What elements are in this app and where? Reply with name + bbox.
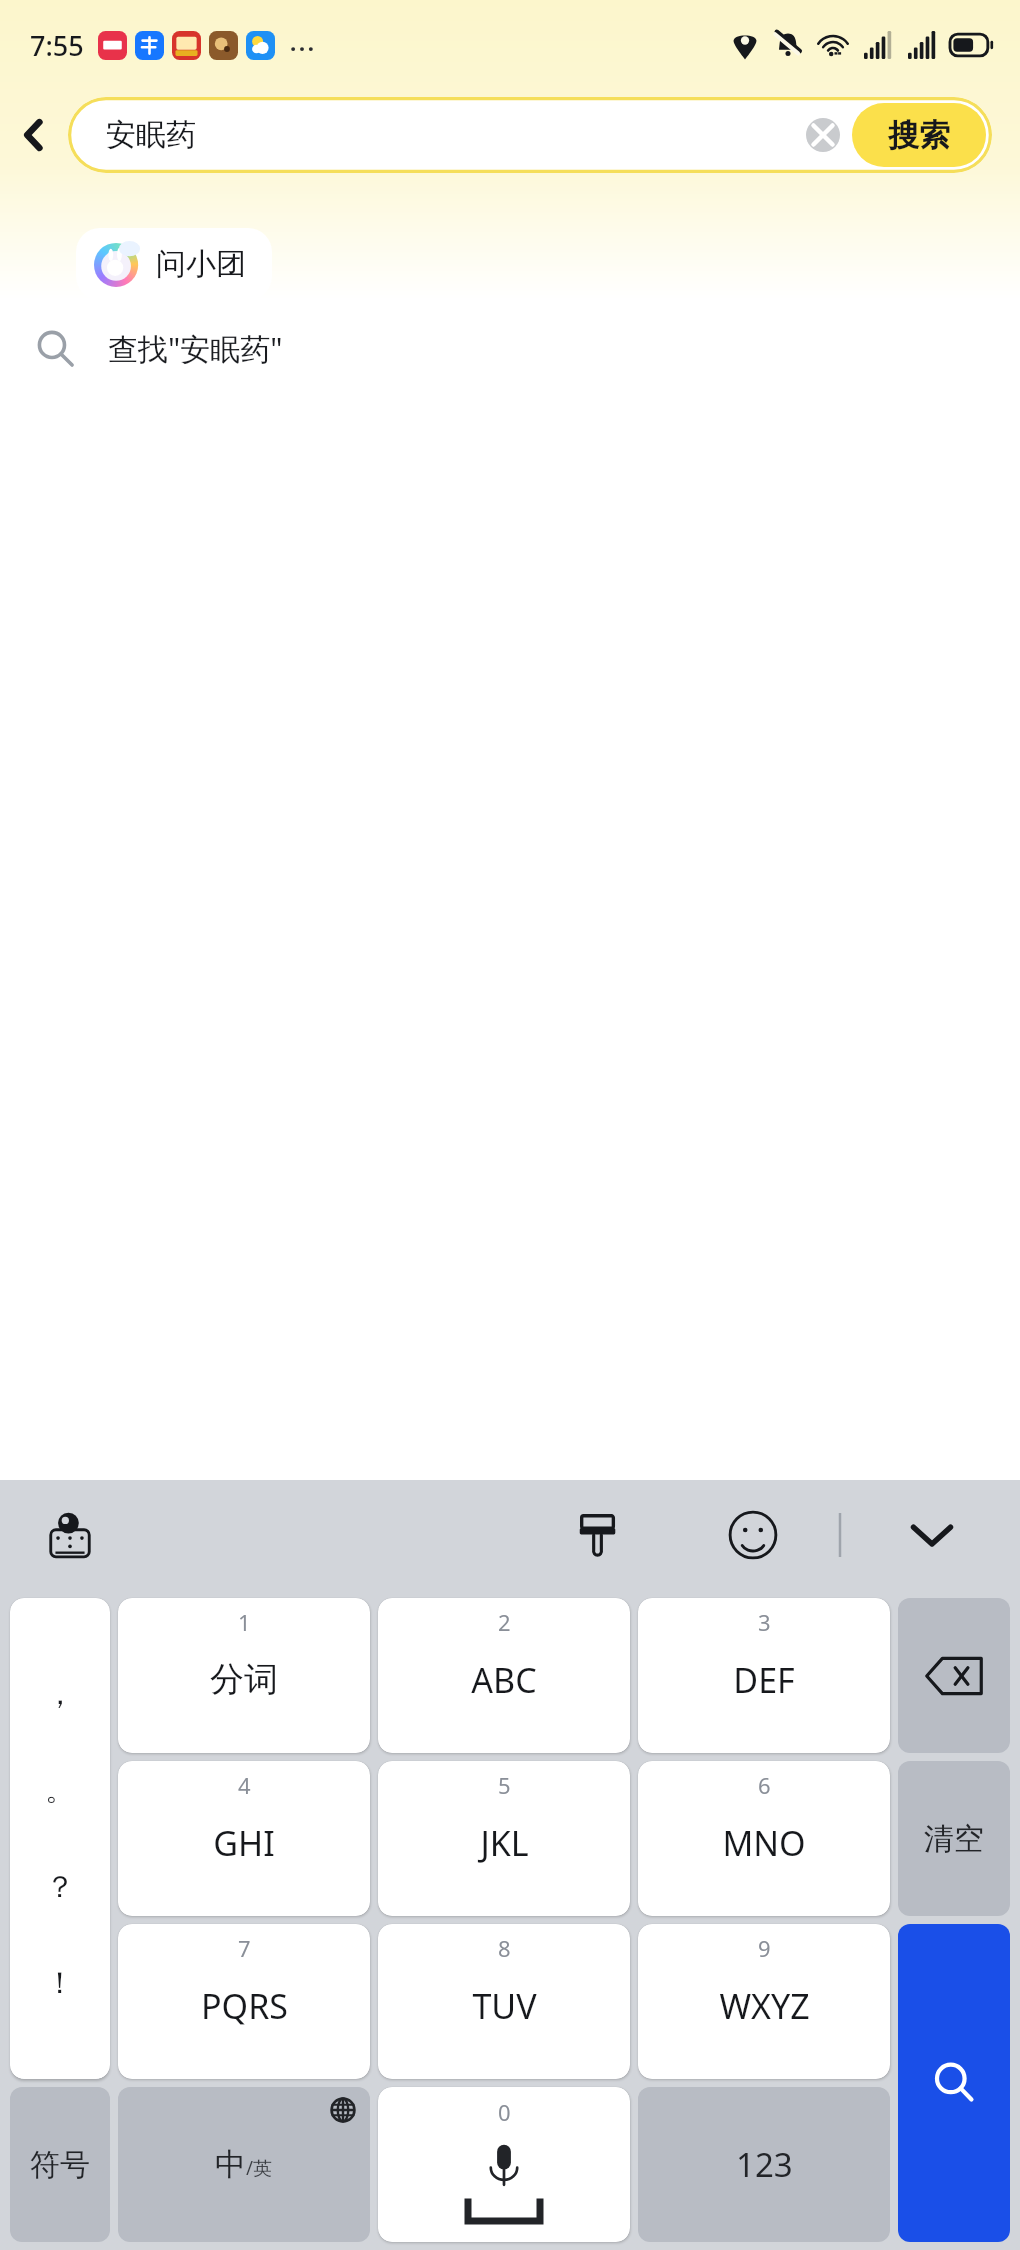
button[interactable]: 123 <box>638 2087 890 2242</box>
button[interactable]: 3 <box>638 1598 890 1753</box>
staticText: JKL <box>480 1820 529 1866</box>
staticText: 6 <box>758 1770 771 1800</box>
staticText: ABC <box>471 1657 537 1703</box>
staticText: 0 <box>498 2097 511 2127</box>
button[interactable]: Back <box>0 92 68 177</box>
button[interactable]: Backspace <box>898 1598 1010 1753</box>
staticText: 123 <box>736 2142 793 2187</box>
button[interactable]: 5 <box>378 1761 630 1916</box>
button[interactable]: 8 <box>378 1924 630 2079</box>
button[interactable]: 4 <box>118 1761 370 1916</box>
button[interactable]: Hide keyboard <box>900 1503 964 1567</box>
staticText: 7:55 <box>30 27 84 64</box>
staticText: GHI <box>213 1820 275 1866</box>
button[interactable]: 符号 <box>10 2087 110 2242</box>
other: Backspace <box>898 1598 1010 1753</box>
button[interactable]: ， <box>10 1598 110 2079</box>
staticText: 搜索 <box>888 116 950 155</box>
staticText: 2 <box>498 1607 511 1637</box>
staticText: 符号 <box>30 2146 90 2184</box>
staticText: 清空 <box>924 1820 984 1858</box>
staticText: MNO <box>722 1820 806 1866</box>
staticText: /英 <box>246 2155 273 2181</box>
staticText: 查找"安眠药" <box>108 328 283 369</box>
staticText: ？ <box>45 1868 75 1906</box>
button[interactable]: Emoji <box>722 1504 784 1566</box>
staticText: 9 <box>758 1933 771 1963</box>
staticText: 中 <box>215 2145 246 2184</box>
staticText: 3 <box>758 1607 771 1637</box>
staticText: TUV <box>472 1983 537 2029</box>
button[interactable]: 9 <box>638 1924 890 2079</box>
button[interactable]: 1 <box>118 1598 370 1753</box>
button[interactable]: 查找"安眠药" <box>0 300 1020 396</box>
staticText: 安眠药 <box>106 116 196 154</box>
button[interactable]: Clear <box>800 112 846 158</box>
button[interactable]: 7 <box>118 1924 370 2079</box>
staticText: 4 <box>238 1770 251 1800</box>
staticText: 问小团 <box>156 245 246 283</box>
staticText: DEF <box>733 1657 795 1703</box>
staticText: 8 <box>498 1933 511 1963</box>
button[interactable]: Keyboard language <box>40 1505 100 1565</box>
staticText: ， <box>45 1675 75 1713</box>
staticText: ！ <box>45 1964 75 2002</box>
staticText: PQRS <box>201 1983 288 2029</box>
other: Search <box>898 1924 1010 2242</box>
button[interactable]: Search <box>898 1924 1010 2242</box>
staticText: 7 <box>238 1933 251 1963</box>
button[interactable]: 中 <box>118 2087 370 2242</box>
button[interactable]: 搜索 <box>852 103 986 167</box>
staticText: 1 <box>238 1607 251 1637</box>
staticText: 。 <box>45 1771 75 1809</box>
button[interactable]: 6 <box>638 1761 890 1916</box>
staticText: WXYZ <box>719 1983 810 2029</box>
button[interactable]: 2 <box>378 1598 630 1753</box>
button[interactable]: 问小团 <box>76 228 272 300</box>
button[interactable]: 清空 <box>898 1761 1010 1916</box>
staticText: 5 <box>498 1770 511 1800</box>
button[interactable]: 0 <box>378 2087 630 2242</box>
staticText: 分词 <box>210 1658 278 1701</box>
button[interactable]: Theme <box>568 1505 628 1565</box>
